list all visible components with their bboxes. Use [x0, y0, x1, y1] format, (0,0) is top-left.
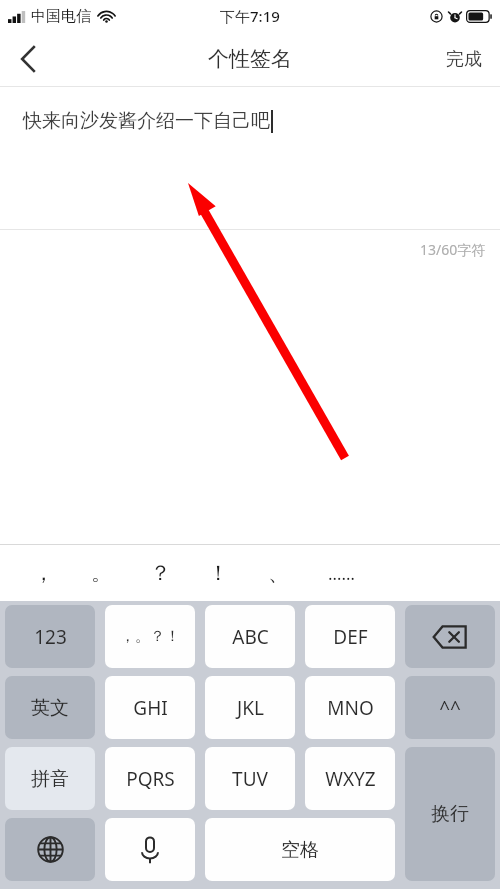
staticText: ，。？！: [120, 627, 180, 646]
staticText: 下午7:19: [220, 6, 280, 26]
staticText: 拼音: [31, 767, 69, 791]
staticText: 123: [34, 624, 67, 650]
button[interactable]: 。: [78, 545, 124, 601]
staticText: WXYZ: [325, 766, 376, 792]
button[interactable]: 换行: [405, 747, 495, 881]
staticText: 、: [268, 560, 289, 586]
button[interactable]: 空格: [205, 818, 395, 881]
button[interactable]: 英文: [5, 676, 95, 739]
button[interactable]: JKL: [205, 676, 295, 739]
button[interactable]: GHI: [105, 676, 195, 739]
staticText: 空格: [281, 838, 319, 862]
staticText: GHI: [133, 695, 168, 721]
staticText: 英文: [31, 696, 69, 720]
staticText: ，: [33, 560, 54, 586]
staticText: 快来向沙发酱介绍一下自己吧: [23, 109, 270, 133]
button[interactable]: 快来向沙发酱介绍一下自己吧: [0, 87, 500, 229]
button[interactable]: 123: [5, 605, 95, 668]
button[interactable]: MNO: [305, 676, 395, 739]
staticText: JKL: [237, 695, 264, 721]
staticText: 完成: [446, 48, 482, 71]
button[interactable]: TUV: [205, 747, 295, 810]
button[interactable]: 拼音: [5, 747, 95, 810]
button[interactable]: ，: [0, 545, 500, 601]
button[interactable]: DEF: [305, 605, 395, 668]
button[interactable]: Backspace: [405, 605, 495, 668]
staticText: ^^: [439, 695, 461, 721]
button[interactable]: Switch language: [5, 818, 95, 881]
button[interactable]: ……: [318, 545, 364, 601]
button[interactable]: 完成: [428, 32, 500, 86]
button[interactable]: ，: [20, 545, 66, 601]
button[interactable]: 、: [255, 545, 301, 601]
staticText: ……: [328, 562, 355, 585]
staticText: 个性签名: [208, 46, 292, 72]
button[interactable]: WXYZ: [305, 747, 395, 810]
staticText: TUV: [232, 766, 268, 792]
staticText: 13/60字符: [420, 240, 486, 259]
staticText: 。: [91, 560, 112, 586]
staticText: MNO: [327, 695, 374, 721]
button[interactable]: Voice input: [105, 818, 195, 881]
button[interactable]: PQRS: [105, 747, 195, 810]
button[interactable]: ABC: [205, 605, 295, 668]
staticText: ABC: [232, 624, 269, 650]
staticText: ！: [208, 560, 229, 586]
staticText: 换行: [431, 802, 469, 826]
staticText: PQRS: [126, 766, 175, 792]
staticText: DEF: [333, 624, 368, 650]
button[interactable]: Back: [0, 32, 56, 86]
button[interactable]: ！: [195, 545, 241, 601]
staticText: 中国电信: [31, 7, 91, 26]
button[interactable]: ^^: [405, 676, 495, 739]
staticText: ？: [150, 560, 171, 586]
button[interactable]: ？: [137, 545, 183, 601]
button[interactable]: ，。？！: [105, 605, 195, 668]
